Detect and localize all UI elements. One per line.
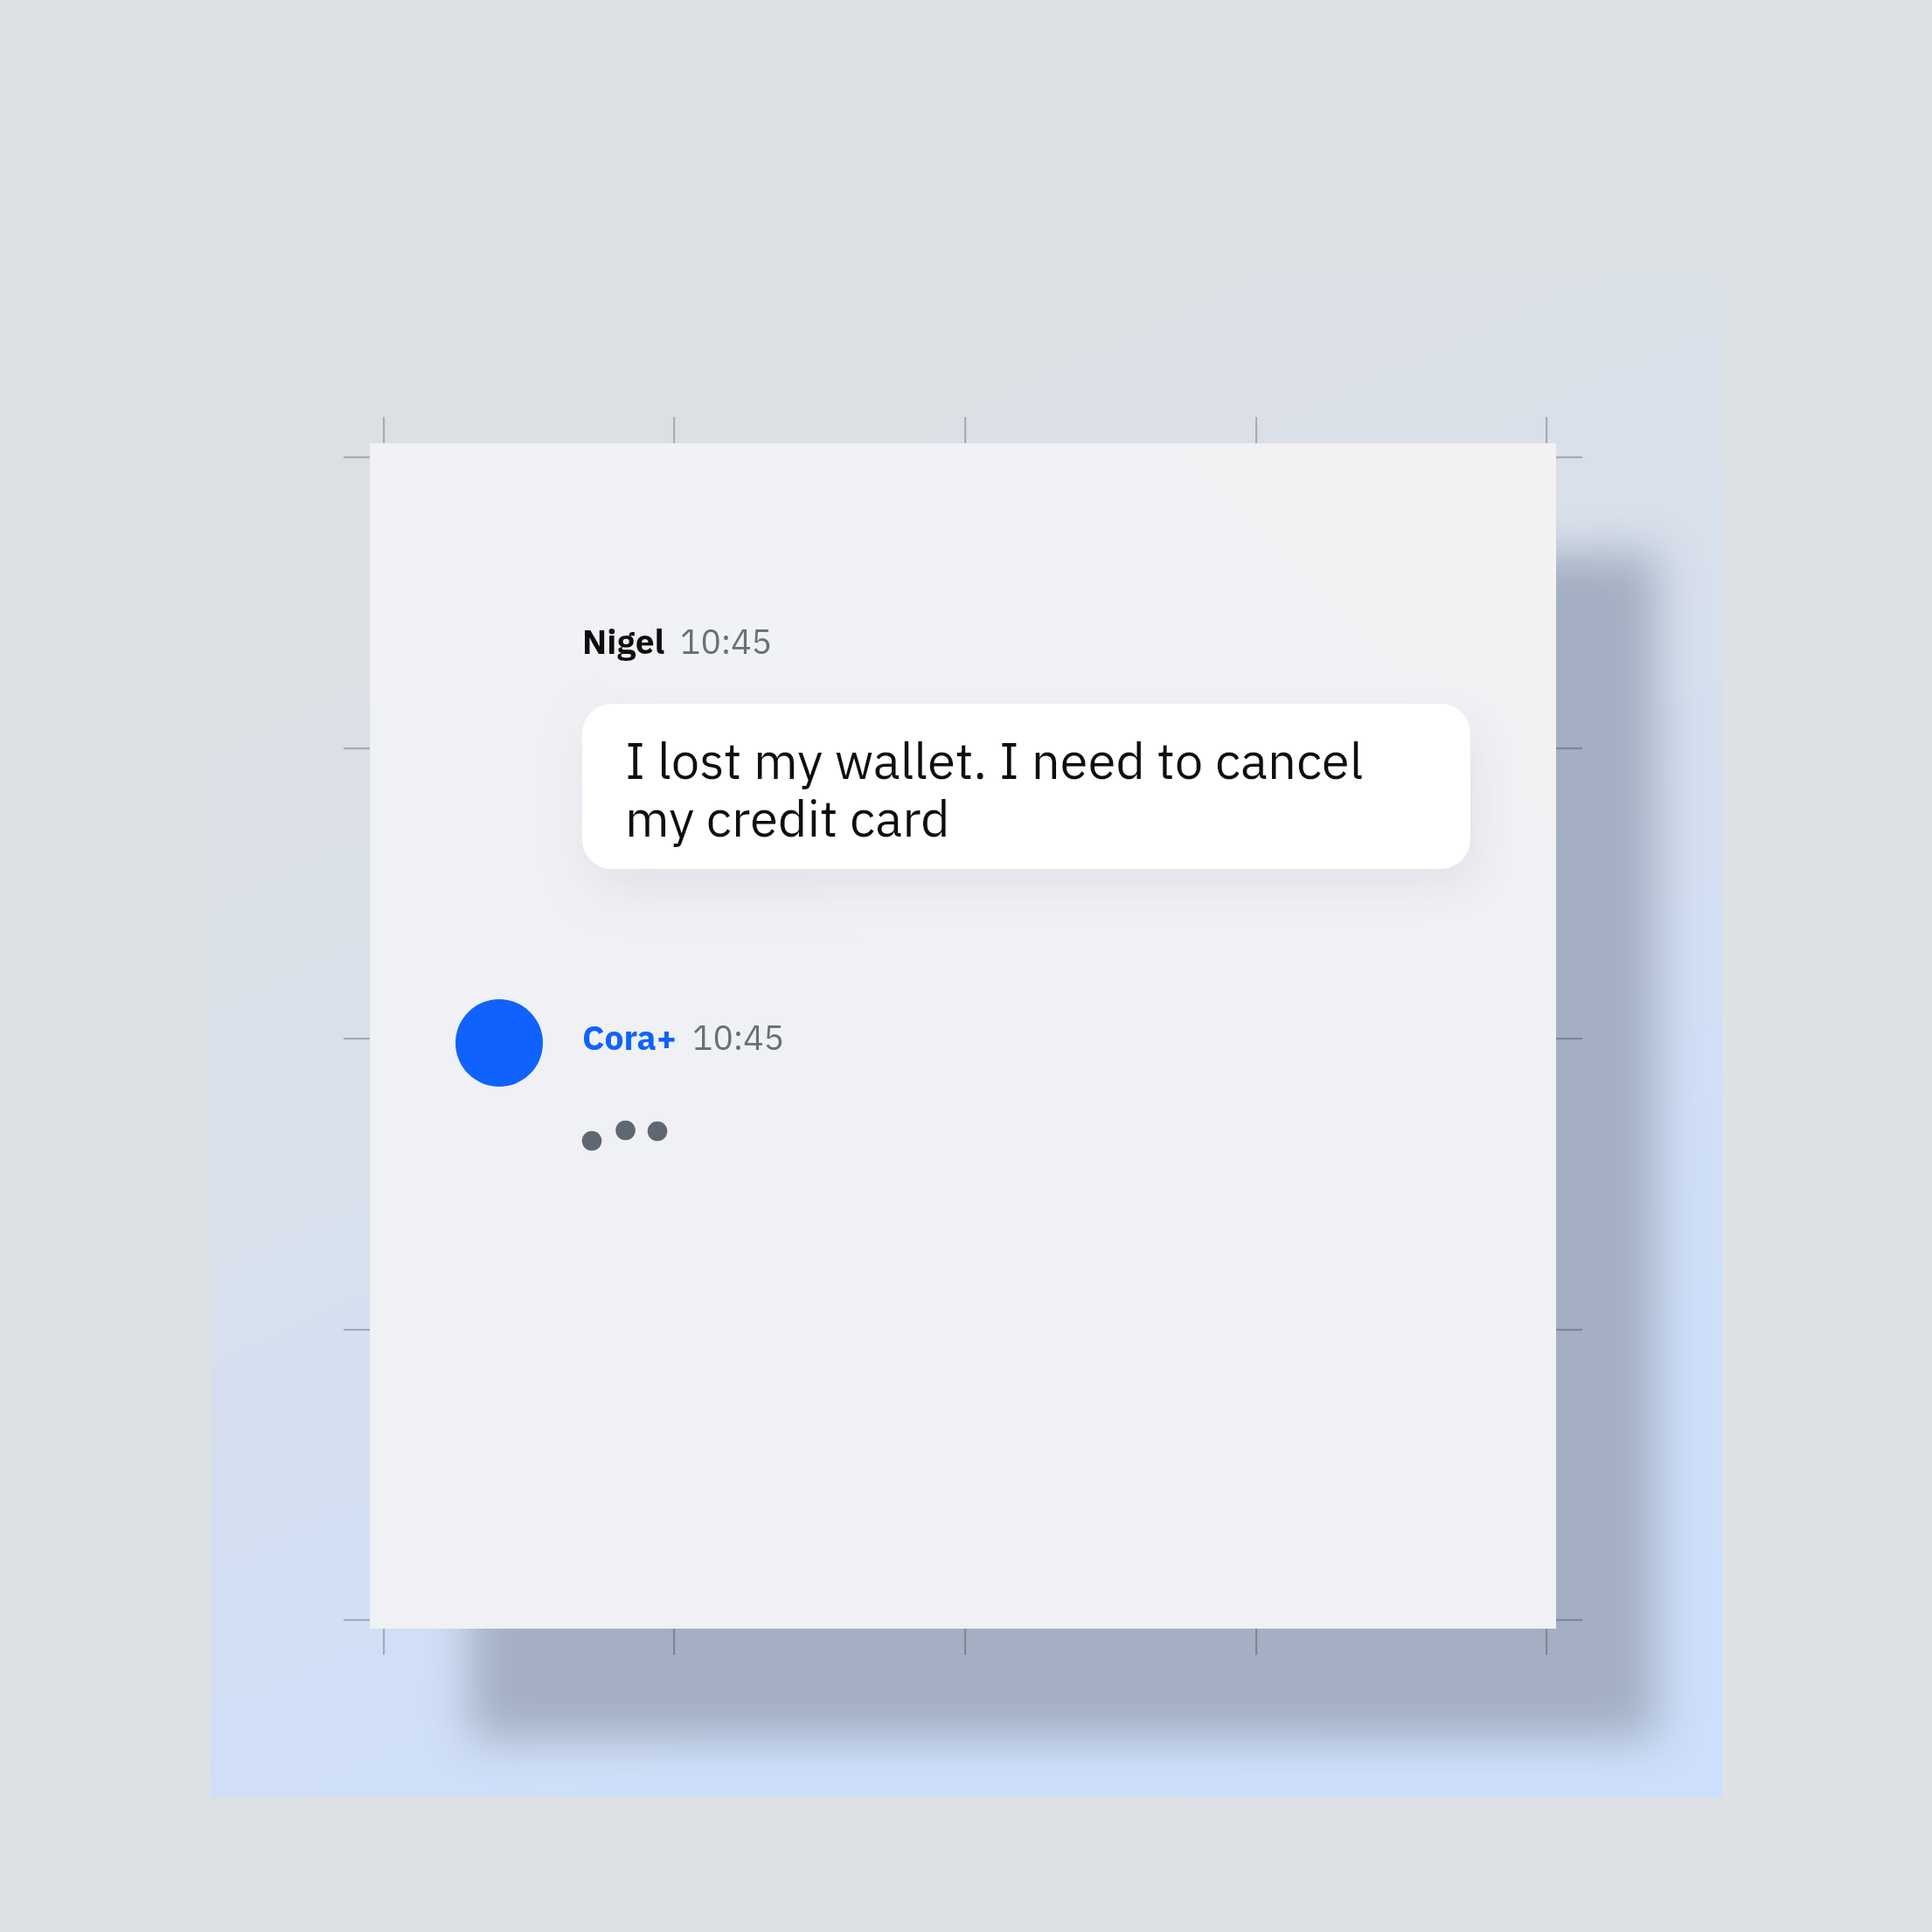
button[interactable]: I lost my wallet. I need to cancel my cr… xyxy=(582,704,1470,869)
staticText: I lost my wallet. I need to cancel my cr… xyxy=(625,727,1424,851)
staticText: 10:45 xyxy=(692,1015,784,1060)
button[interactable]: Nigel xyxy=(582,619,772,664)
staticText: Cora+ xyxy=(582,1015,678,1060)
button[interactable]: Cora+ xyxy=(582,1015,784,1060)
other: Cora+ is typing xyxy=(577,1115,673,1158)
staticText: 10:45 xyxy=(680,619,772,664)
staticText: Nigel xyxy=(582,619,665,664)
button[interactable]: Cora+ assistant avatar xyxy=(455,999,543,1087)
